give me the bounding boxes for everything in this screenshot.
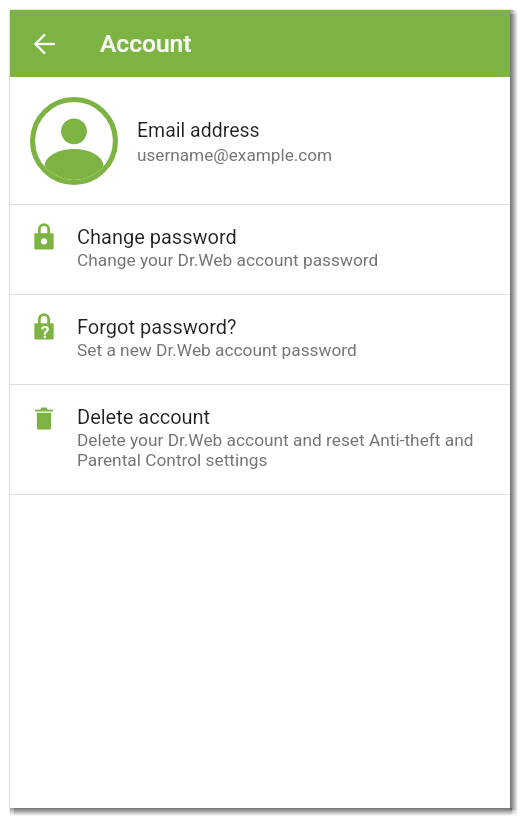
button[interactable]: ? <box>10 295 510 384</box>
button[interactable]: Change password <box>10 205 510 294</box>
staticText: Change password <box>77 225 237 248</box>
staticText: username@example.com <box>137 145 333 165</box>
staticText: Delete your Dr.Web account and reset Ant… <box>77 430 474 470</box>
staticText: ? <box>41 322 50 342</box>
button[interactable]: Delete account <box>10 385 510 494</box>
staticText: Account <box>100 29 192 58</box>
button[interactable]: Email address <box>10 77 510 204</box>
button[interactable]: Back <box>23 22 67 66</box>
staticText: Set a new Dr.Web account password <box>77 340 357 360</box>
staticText: Forgot password? <box>77 315 237 338</box>
staticText: Email address <box>137 119 260 142</box>
staticText: Delete account <box>77 405 211 428</box>
staticText: Change your Dr.Web account password <box>77 250 379 270</box>
